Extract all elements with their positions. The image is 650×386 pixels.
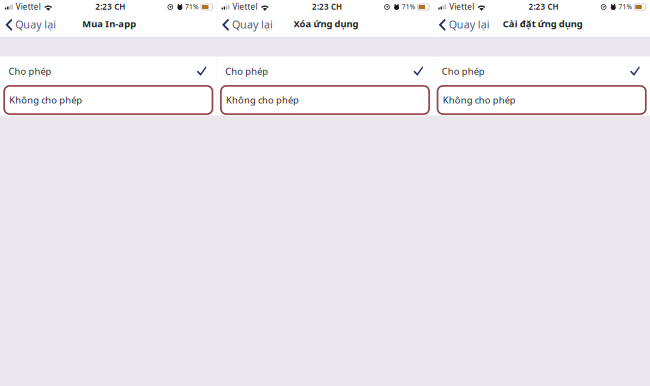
staticText: Không cho phép — [9, 94, 82, 106]
staticText: 71% — [185, 2, 199, 11]
staticText: Mua In-app — [82, 17, 136, 30]
button[interactable]: Cho phép — [217, 56, 433, 86]
button[interactable]: Quay lại — [433, 14, 493, 37]
button[interactable]: Không cho phép — [437, 86, 646, 114]
button[interactable]: Quay lại — [217, 14, 276, 37]
staticText: Xóa ứng dụng — [293, 17, 358, 30]
button[interactable]: Không cho phép — [4, 86, 212, 114]
button[interactable]: Cho phép — [0, 56, 217, 86]
staticText: Quay lại — [449, 17, 490, 31]
staticText: Không cho phép — [443, 94, 516, 106]
staticText: Cài đặt ứng dụng — [503, 17, 583, 30]
button[interactable]: Cho phép — [433, 56, 650, 86]
staticText: Viettel — [232, 1, 257, 12]
staticText: 2:23 CH — [312, 1, 342, 12]
staticText: 2:23 CH — [95, 1, 125, 12]
staticText: Cho phép — [442, 65, 485, 77]
staticText: 2:23 CH — [529, 1, 559, 12]
staticText: Viettel — [449, 1, 474, 12]
staticText: 71% — [402, 2, 416, 11]
staticText: Quay lại — [15, 17, 56, 31]
staticText: Viettel — [16, 1, 41, 12]
staticText: Quay lại — [232, 17, 273, 31]
staticText: Cho phép — [8, 65, 51, 77]
button[interactable]: Không cho phép — [221, 86, 429, 114]
staticText: Không cho phép — [226, 94, 299, 106]
staticText: Cho phép — [225, 65, 268, 77]
staticText: 71% — [618, 2, 632, 11]
button[interactable]: Quay lại — [0, 14, 59, 37]
